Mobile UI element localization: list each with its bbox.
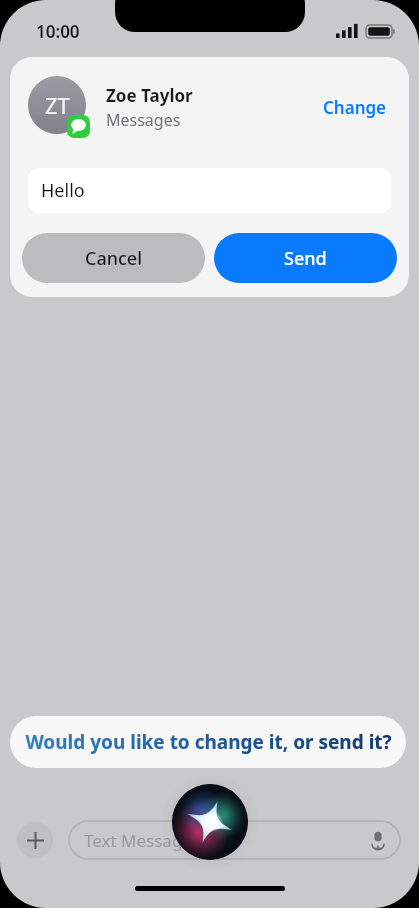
staticText: Cancel [85,246,143,271]
staticText: ZT [45,90,70,120]
button[interactable]: Cancel [22,233,205,283]
button[interactable]: Would you like to change it, or send it? [10,716,406,768]
button[interactable]: Add attachment [17,822,53,858]
staticText: 10:00 [36,20,80,43]
button[interactable]: Dictate [365,827,391,853]
staticText: Change [323,96,387,119]
staticText: Hello [41,178,85,203]
button[interactable]: Siri [172,784,248,860]
staticText: Zoe Taylor [106,84,193,107]
staticText: Would you like to change it, or send it? [25,729,392,755]
staticText: Send [284,246,327,271]
button[interactable]: Text Message • SMS [68,820,401,860]
button[interactable]: Send [214,233,397,283]
staticText: Messages [106,109,181,131]
button[interactable]: Hello [28,168,391,213]
staticText: Text Message • SMS [84,829,242,852]
button[interactable]: Change [319,90,391,125]
